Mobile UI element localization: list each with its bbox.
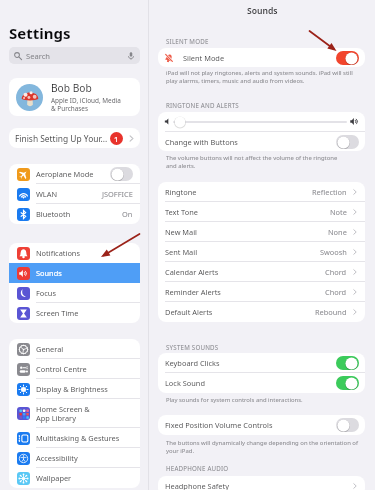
staticText: The volume buttons will not affect the v…	[166, 154, 371, 170]
staticText: The buttons will dynamically change depe…	[166, 439, 371, 455]
staticText: Silent Mode	[183, 53, 225, 63]
staticText: iPad will not play ringtones, alerts and…	[166, 69, 371, 85]
button[interactable]: Display & Brightness	[9, 379, 140, 399]
staticText: Settings	[9, 23, 71, 43]
button[interactable]: Focus	[9, 283, 140, 303]
button[interactable]: Fixed Position Volume Controls	[158, 415, 365, 435]
staticText: Finish Setting Up Your...	[15, 133, 108, 144]
staticText: Sounds	[247, 5, 278, 17]
button[interactable]: Reminder Alerts	[158, 282, 365, 302]
button[interactable]: Ringtone	[158, 182, 365, 202]
button[interactable]: Bob Bob	[9, 78, 140, 116]
staticText: Accessibility	[36, 453, 78, 463]
staticText: RINGTONE AND ALERTS	[166, 101, 239, 109]
button[interactable]: Text Tone	[158, 202, 365, 222]
button[interactable]: Silent Mode	[158, 48, 365, 67]
button[interactable]: General	[9, 339, 140, 359]
staticText: Wallpaper	[36, 473, 72, 483]
staticText: Multitasking & Gestures	[36, 433, 120, 443]
button[interactable]: Default Alerts	[158, 302, 365, 322]
staticText: Focus	[36, 288, 56, 298]
staticText: Home Screen & App Library	[36, 404, 90, 423]
staticText: Search	[26, 51, 51, 61]
staticText: SYSTEM SOUNDS	[166, 343, 219, 351]
staticText: Headphone Safety	[165, 481, 229, 490]
button[interactable]: Switch off	[336, 135, 359, 149]
button[interactable]: Wallpaper	[9, 468, 140, 488]
staticText: Sounds	[36, 268, 62, 278]
staticText: Apple ID, iCloud, Media & Purchases	[51, 96, 121, 113]
staticText: Display & Brightness	[36, 384, 108, 394]
button[interactable]: Screen Time	[9, 303, 140, 323]
button[interactable]: Finish Setting Up Your...	[9, 128, 140, 148]
button[interactable]: Search	[9, 47, 140, 64]
staticText: Rebound	[315, 307, 347, 317]
staticText: Change with Buttons	[165, 137, 238, 147]
button[interactable]: Switch on	[336, 51, 359, 65]
staticText: Bob Bob	[51, 81, 92, 95]
staticText: Note	[330, 207, 347, 217]
staticText: Fixed Position Volume Controls	[165, 420, 273, 430]
button[interactable]: Control Centre	[9, 359, 140, 379]
staticText: JSOFFICE	[102, 189, 133, 199]
button[interactable]: Aeroplane Mode	[9, 164, 140, 184]
staticText: Lock Sound	[165, 378, 205, 388]
button[interactable]: Sounds	[9, 263, 140, 283]
staticText: 1	[114, 134, 119, 144]
staticText: Reminder Alerts	[165, 287, 221, 297]
staticText: Chord	[325, 287, 347, 297]
staticText: Swoosh	[320, 247, 347, 257]
staticText: Reflection	[312, 187, 347, 197]
button[interactable]: WLAN	[9, 184, 140, 204]
button[interactable]: Change with Buttons	[158, 132, 365, 151]
staticText: Ringtone	[165, 187, 197, 197]
staticText: Default Alerts	[165, 307, 213, 317]
staticText: Aeroplane Mode	[36, 169, 94, 179]
button[interactable]: Calendar Alerts	[158, 262, 365, 282]
button[interactable]: Notifications	[9, 243, 140, 263]
button[interactable]: Multitasking & Gestures	[9, 428, 140, 448]
button[interactable]: Lock Sound	[158, 373, 365, 393]
staticText: Screen Time	[36, 308, 79, 318]
staticText: Bluetooth	[36, 209, 71, 219]
staticText: General	[36, 344, 64, 354]
staticText: Chord	[325, 267, 347, 277]
button[interactable]: Accessibility	[9, 448, 140, 468]
staticText: HEADPHONE AUDIO	[166, 464, 229, 472]
staticText: Sent Mail	[165, 247, 198, 257]
staticText: Control Centre	[36, 364, 87, 374]
staticText: Text Tone	[165, 207, 198, 217]
staticText: Play sounds for system controls and inte…	[166, 396, 371, 404]
staticText: WLAN	[36, 189, 58, 199]
staticText: Keyboard Clicks	[165, 358, 220, 368]
button[interactable]: Switch off	[336, 418, 359, 432]
staticText: SILENT MODE	[166, 37, 209, 45]
button[interactable]: Headphone Safety	[158, 476, 365, 490]
button[interactable]: Switch on	[336, 356, 359, 370]
staticText: On	[122, 209, 133, 219]
staticText: New Mail	[165, 227, 198, 237]
button[interactable]: Switch on	[336, 376, 359, 390]
button[interactable]: New Mail	[158, 222, 365, 242]
button[interactable]: Switch off	[110, 167, 133, 181]
button[interactable]: Home Screen & App Library	[9, 399, 140, 428]
staticText: None	[328, 227, 347, 237]
staticText: Calendar Alerts	[165, 267, 219, 277]
button[interactable]: Keyboard Clicks	[158, 353, 365, 373]
button[interactable]: Bluetooth	[9, 204, 140, 224]
staticText: Notifications	[36, 248, 80, 258]
button[interactable]: Sent Mail	[158, 242, 365, 262]
